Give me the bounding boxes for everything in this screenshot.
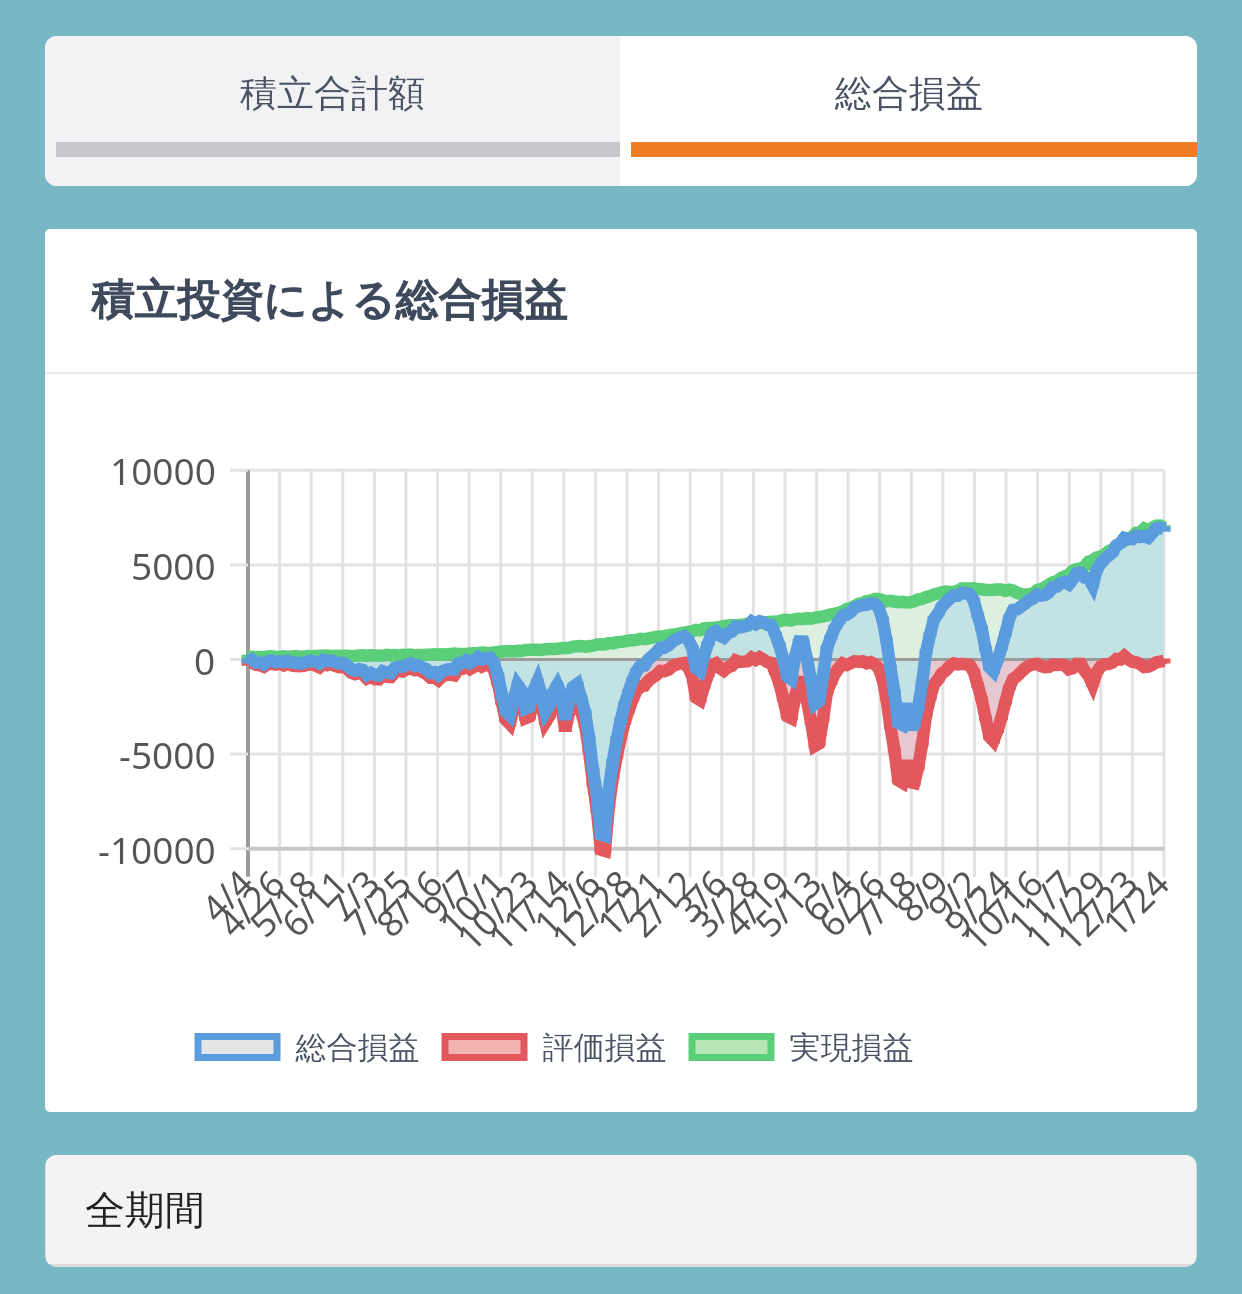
button[interactable]: 積立合計額: [45, 36, 620, 186]
staticText: 全期間: [85, 1185, 205, 1235]
button[interactable]: 全期間: [46, 1155, 1196, 1264]
button[interactable]: 総合損益: [620, 36, 1197, 186]
staticText: 積立合計額: [240, 70, 425, 117]
staticText: 総合損益: [835, 70, 983, 117]
staticText: 積立投資による総合損益: [91, 274, 568, 328]
